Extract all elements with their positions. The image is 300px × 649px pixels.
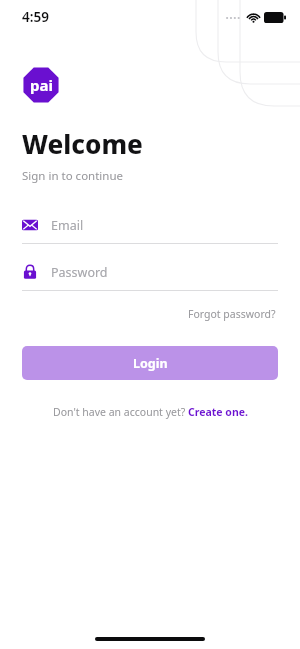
staticText: Email: [51, 217, 84, 234]
button[interactable]: Don't have an account yet? Create one.: [50, 402, 251, 422]
staticText: Welcome: [22, 126, 143, 161]
staticText: Don't have an account yet? Create one.: [53, 405, 248, 419]
staticText: 4:59: [22, 8, 49, 26]
other: Email: [22, 217, 38, 233]
staticText: Login: [133, 355, 168, 372]
staticText: pai: [30, 75, 53, 95]
staticText: Sign in to continue: [22, 168, 124, 184]
other: Password: [22, 264, 38, 280]
staticText: Password: [51, 264, 108, 281]
button[interactable]: Forgot password?: [186, 304, 278, 324]
button[interactable]: Login: [22, 346, 278, 380]
staticText: Forgot password?: [188, 307, 276, 321]
